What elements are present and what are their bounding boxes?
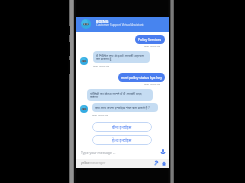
staticText: meri policy status kya hey [121,75,162,80]
staticText: BOING [96,19,109,24]
staticText: Policy Services [138,37,162,42]
button[interactable]: मैं निश्चित रूप से इसमें आपकी सहायता कर … [93,51,150,63]
button[interactable]: बीमा इनवॉइस [92,122,152,132]
button[interactable]: Type your message ... [76,146,169,160]
staticText: Customer Support Virtual Assistant [96,23,144,27]
button[interactable]: क्या आप अपना इनवॉइस नंबर बता सकते हैं ? [92,103,158,112]
other: Attach file [154,161,158,166]
staticText: messenger [90,161,106,165]
staticText: Mon 10:49 AM [93,64,110,67]
other: Voice input [161,149,165,154]
staticText: Mon 10:49 AM [144,82,161,85]
staticText: हेल्थ इनवॉइस [112,138,132,143]
other: Home [162,161,166,166]
button[interactable]: meri policy status kya hey [118,73,165,82]
staticText: बीमा इनवॉइस [112,125,132,130]
staticText: पॉलिसी का स्टेटस जानने में मैं आपकी मदद … [90,91,150,99]
staticText: Mon 10:49 AM [144,44,161,47]
staticText: Mon 10:49 AM [92,113,109,116]
button[interactable]: BOING [76,17,169,32]
button[interactable]: हेल्थ इनवॉइस [92,135,152,145]
staticText: मैं निश्चित रूप से इसमें आपकी सहायता कर … [96,53,147,61]
staticText: yellow [81,161,90,165]
button[interactable]: Policy Services [135,35,165,44]
button[interactable]: पॉलिसी का स्टेटस जानने में मैं आपकी मदद … [87,89,153,101]
staticText: क्या आप अपना इनवॉइस नंबर बता सकते हैं ? [95,105,150,110]
staticText: Type your message ... [81,150,116,155]
